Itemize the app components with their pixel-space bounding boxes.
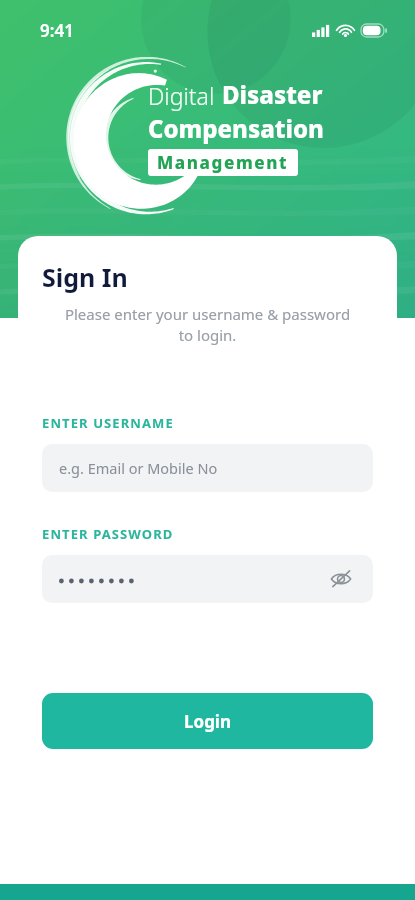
staticText: Login	[184, 710, 232, 733]
button[interactable]: Login	[42, 693, 373, 749]
staticText: Please enter your username & password to…	[40, 304, 375, 346]
staticText: 9:41	[40, 19, 74, 42]
staticText: ENTER PASSWORD	[42, 525, 174, 543]
button[interactable]: e.g. Email or Mobile No	[42, 444, 373, 492]
staticText: Compensation	[148, 112, 324, 145]
staticText: Management	[157, 151, 289, 174]
staticText: Sign In	[42, 260, 128, 294]
button[interactable]: Show password	[326, 564, 356, 594]
staticText: e.g. Email or Mobile No	[59, 458, 218, 478]
staticText: Digital	[148, 80, 215, 111]
button[interactable]: Show password	[42, 555, 373, 603]
staticText: Disaster	[222, 78, 323, 111]
staticText: ENTER USERNAME	[42, 414, 174, 432]
